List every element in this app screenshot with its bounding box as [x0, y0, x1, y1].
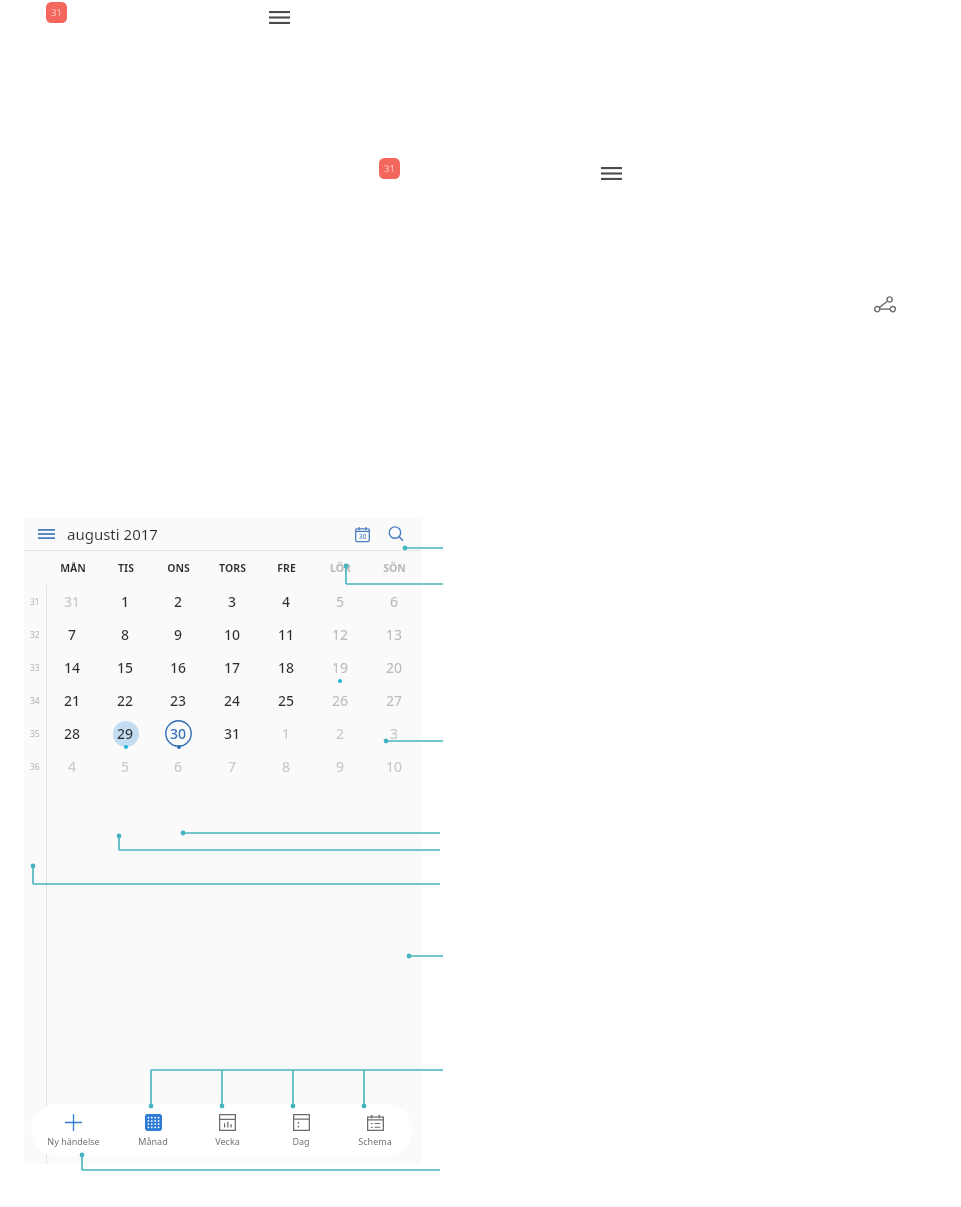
button[interactable]: 7	[46, 618, 99, 651]
button[interactable]: 4	[46, 750, 99, 783]
button[interactable]: 11	[259, 618, 313, 651]
button[interactable]: 13	[367, 618, 421, 651]
button[interactable]: 2	[313, 717, 367, 750]
button[interactable]: Menu	[34, 522, 58, 546]
staticText: 5	[121, 757, 130, 776]
staticText: 6	[390, 592, 399, 611]
button[interactable]: Menu	[266, 4, 292, 30]
staticText: 3	[390, 724, 399, 743]
button[interactable]: 5	[99, 750, 152, 783]
staticText: 19	[332, 658, 349, 677]
button[interactable]: 28	[46, 717, 99, 750]
button[interactable]: 3	[367, 717, 421, 750]
button[interactable]: 10	[367, 750, 421, 783]
staticText: 29	[117, 724, 134, 743]
staticText: 1	[282, 724, 291, 743]
staticText: ONS	[167, 561, 190, 575]
button[interactable]: 9	[152, 618, 205, 651]
button[interactable]: Search	[383, 521, 409, 547]
button[interactable]: 1	[99, 585, 152, 618]
button[interactable]: 27	[367, 684, 421, 717]
staticText: 2	[336, 724, 345, 743]
button[interactable]: 2	[152, 585, 205, 618]
button[interactable]: 6	[367, 585, 421, 618]
staticText: 14	[64, 658, 81, 677]
button[interactable]: 29	[99, 717, 152, 750]
staticText: 27	[386, 691, 403, 710]
button[interactable]: Go to today	[349, 521, 375, 547]
staticText: 31	[51, 6, 63, 19]
staticText: 34	[30, 695, 40, 707]
button[interactable]: 10	[205, 618, 259, 651]
staticText: 31	[224, 724, 241, 743]
staticText: SÖN	[383, 561, 406, 575]
staticText: 24	[224, 691, 241, 710]
button[interactable]: 21	[46, 684, 99, 717]
button[interactable]: 6	[152, 750, 205, 783]
staticText: 25	[278, 691, 295, 710]
staticText: 30	[170, 724, 187, 743]
staticText: 16	[170, 658, 187, 677]
button[interactable]: 12	[313, 618, 367, 651]
staticText: Månad	[138, 1135, 168, 1147]
staticText: 7	[68, 625, 77, 644]
staticText: 31	[384, 162, 396, 175]
button[interactable]: 17	[205, 651, 259, 684]
button[interactable]: 25	[259, 684, 313, 717]
staticText: 9	[174, 625, 183, 644]
staticText: 8	[282, 757, 291, 776]
button[interactable]: Månad	[116, 1108, 190, 1153]
staticText: 35	[30, 728, 40, 740]
staticText: Vecka	[215, 1135, 240, 1147]
staticText: 13	[386, 625, 403, 644]
button[interactable]: 31	[46, 585, 99, 618]
button[interactable]: 18	[259, 651, 313, 684]
staticText: 31	[30, 596, 40, 608]
button[interactable]: 4	[259, 585, 313, 618]
button[interactable]: 30	[152, 717, 205, 750]
button[interactable]: Vecka	[190, 1108, 264, 1153]
button[interactable]: 3	[205, 585, 259, 618]
button[interactable]: 22	[99, 684, 152, 717]
button[interactable]: 24	[205, 684, 259, 717]
button[interactable]: Ny händelse	[31, 1108, 116, 1153]
button[interactable]: 8	[259, 750, 313, 783]
button[interactable]: 31	[205, 717, 259, 750]
staticText: Dag	[292, 1135, 310, 1147]
button[interactable]: 14	[46, 651, 99, 684]
button[interactable]: Share	[870, 291, 900, 321]
staticText: 3	[228, 592, 237, 611]
staticText: 28	[64, 724, 81, 743]
staticText: LÖR	[330, 561, 351, 575]
staticText: 17	[224, 658, 241, 677]
button[interactable]: Menu	[598, 160, 624, 186]
button[interactable]: 19	[313, 651, 367, 684]
button[interactable]: 26	[313, 684, 367, 717]
staticText: 30	[359, 532, 367, 541]
button[interactable]: 7	[205, 750, 259, 783]
button[interactable]: 23	[152, 684, 205, 717]
staticText: 11	[278, 625, 295, 644]
button[interactable]: 8	[99, 618, 152, 651]
staticText: 9	[336, 757, 345, 776]
staticText: 21	[64, 691, 81, 710]
staticText: 5	[336, 592, 345, 611]
button[interactable]: Dag	[264, 1108, 338, 1153]
button[interactable]: 5	[313, 585, 367, 618]
staticText: 4	[282, 592, 291, 611]
button[interactable]: 20	[367, 651, 421, 684]
staticText: 22	[117, 691, 134, 710]
staticText: 7	[228, 757, 237, 776]
button[interactable]: 15	[99, 651, 152, 684]
staticText: 10	[224, 625, 241, 644]
staticText: 18	[278, 658, 295, 677]
staticText: 4	[68, 757, 77, 776]
staticText: 32	[30, 629, 40, 641]
button[interactable]: Schema	[338, 1108, 412, 1153]
staticText: 15	[117, 658, 134, 677]
staticText: 6	[174, 757, 183, 776]
button[interactable]: 9	[313, 750, 367, 783]
button[interactable]: 16	[152, 651, 205, 684]
staticText: 20	[386, 658, 403, 677]
button[interactable]: 1	[259, 717, 313, 750]
